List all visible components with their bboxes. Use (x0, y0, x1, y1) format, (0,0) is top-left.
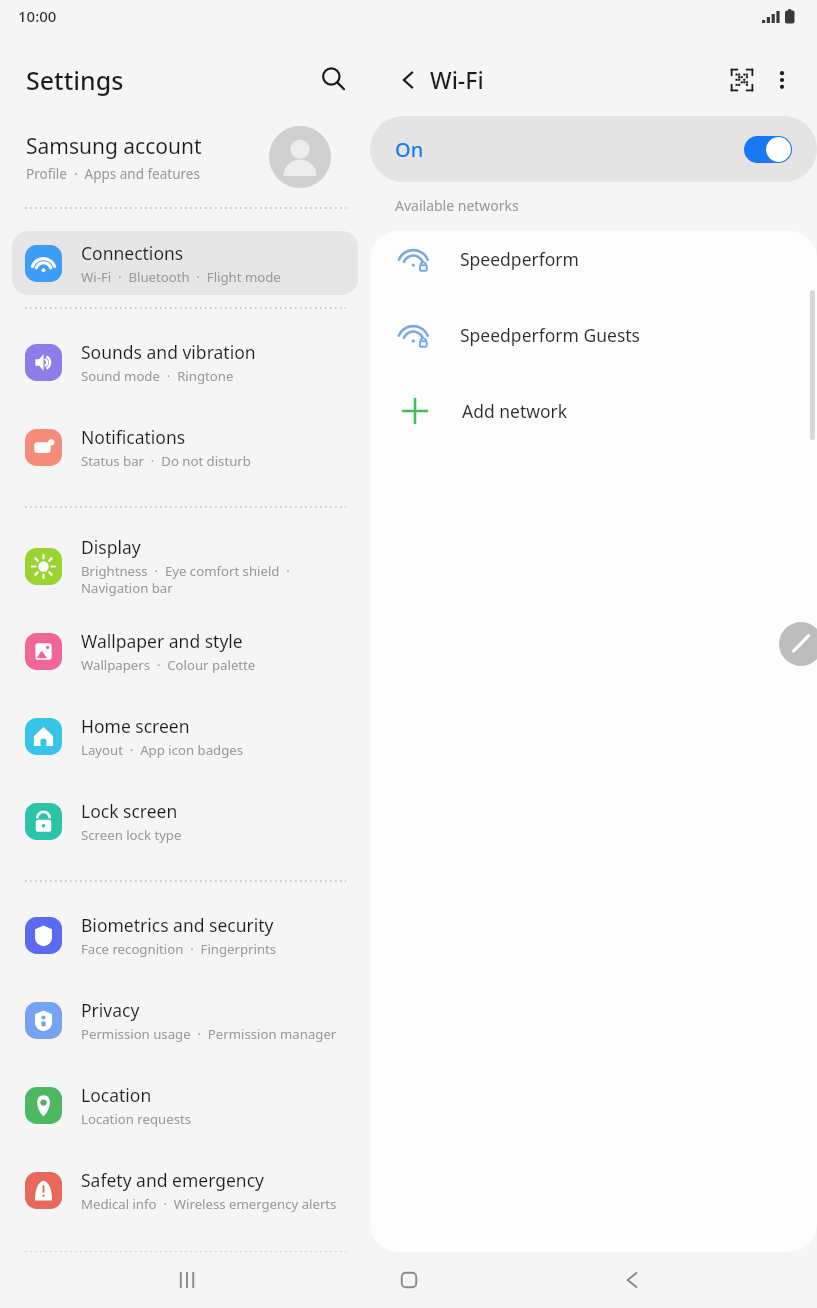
button[interactable]: Wallpaper and style (12, 619, 358, 683)
staticText: Screen lock type (81, 826, 182, 844)
button[interactable]: Add network (370, 383, 817, 439)
staticText: Display (81, 535, 141, 559)
staticText: Biometrics and security (81, 913, 274, 937)
button[interactable]: Safety and emergency (12, 1158, 358, 1222)
staticText: Layout · App icon badges (81, 741, 244, 759)
staticText: Permission usage · Permission manager (81, 1025, 337, 1043)
staticText: Profile · Apps and features (26, 165, 200, 183)
staticText: Wi-Fi · Bluetooth · Flight mode (81, 268, 281, 286)
button[interactable]: Speedperform Guests (370, 307, 817, 363)
staticText: Location requests (81, 1110, 192, 1128)
staticText: Privacy (81, 998, 140, 1022)
staticText: Brightness · Eye comfort shield · Naviga… (81, 562, 290, 597)
button[interactable]: Back (595, 1252, 665, 1308)
button[interactable]: Edit (779, 622, 817, 666)
button[interactable]: Biometrics and security (12, 903, 358, 967)
staticText: Lock screen (81, 799, 178, 823)
staticText: Available networks (395, 196, 519, 215)
staticText: Add network (462, 399, 568, 423)
staticText: Speedperform (460, 247, 579, 271)
button[interactable]: More options (762, 60, 802, 100)
staticText: 10:00 (18, 6, 57, 26)
staticText: Wi-Fi (430, 64, 484, 95)
staticText: Safety and emergency (81, 1168, 264, 1192)
staticText: Location (81, 1083, 152, 1107)
button[interactable]: Notifications (12, 415, 358, 479)
button[interactable]: Samsung account (0, 121, 370, 193)
staticText: Home screen (81, 714, 190, 738)
staticText: Samsung account (26, 132, 202, 161)
staticText: Wallpapers · Colour palette (81, 656, 256, 674)
staticText: Medical info · Wireless emergency alerts (81, 1195, 337, 1213)
staticText: Notifications (81, 425, 186, 449)
staticText: Face recognition · Fingerprints (81, 940, 277, 958)
staticText: Wallpaper and style (81, 629, 243, 653)
staticText: Sound mode · Ringtone (81, 367, 234, 385)
staticText: Status bar · Do not disturb (81, 452, 251, 470)
button[interactable]: Sounds and vibration (12, 330, 358, 394)
staticText: Sounds and vibration (81, 340, 256, 364)
button[interactable]: Connections (12, 231, 358, 295)
staticText: Connections (81, 241, 184, 265)
button[interactable]: Search (312, 58, 354, 100)
button[interactable]: Home screen (12, 704, 358, 768)
button[interactable]: Display (12, 529, 358, 603)
button[interactable]: On (370, 116, 817, 182)
staticText: Settings (26, 63, 124, 97)
button[interactable]: Scan QR code (722, 60, 762, 100)
button[interactable]: Home (374, 1252, 444, 1308)
button[interactable]: Back (386, 60, 426, 100)
button[interactable]: Lock screen (12, 789, 358, 853)
button[interactable]: Speedperform (370, 231, 817, 287)
button[interactable]: Location (12, 1073, 358, 1137)
button[interactable]: Recents (152, 1252, 222, 1308)
button[interactable]: Privacy (12, 988, 358, 1052)
staticText: Speedperform Guests (460, 323, 640, 347)
staticText: On (395, 136, 744, 163)
